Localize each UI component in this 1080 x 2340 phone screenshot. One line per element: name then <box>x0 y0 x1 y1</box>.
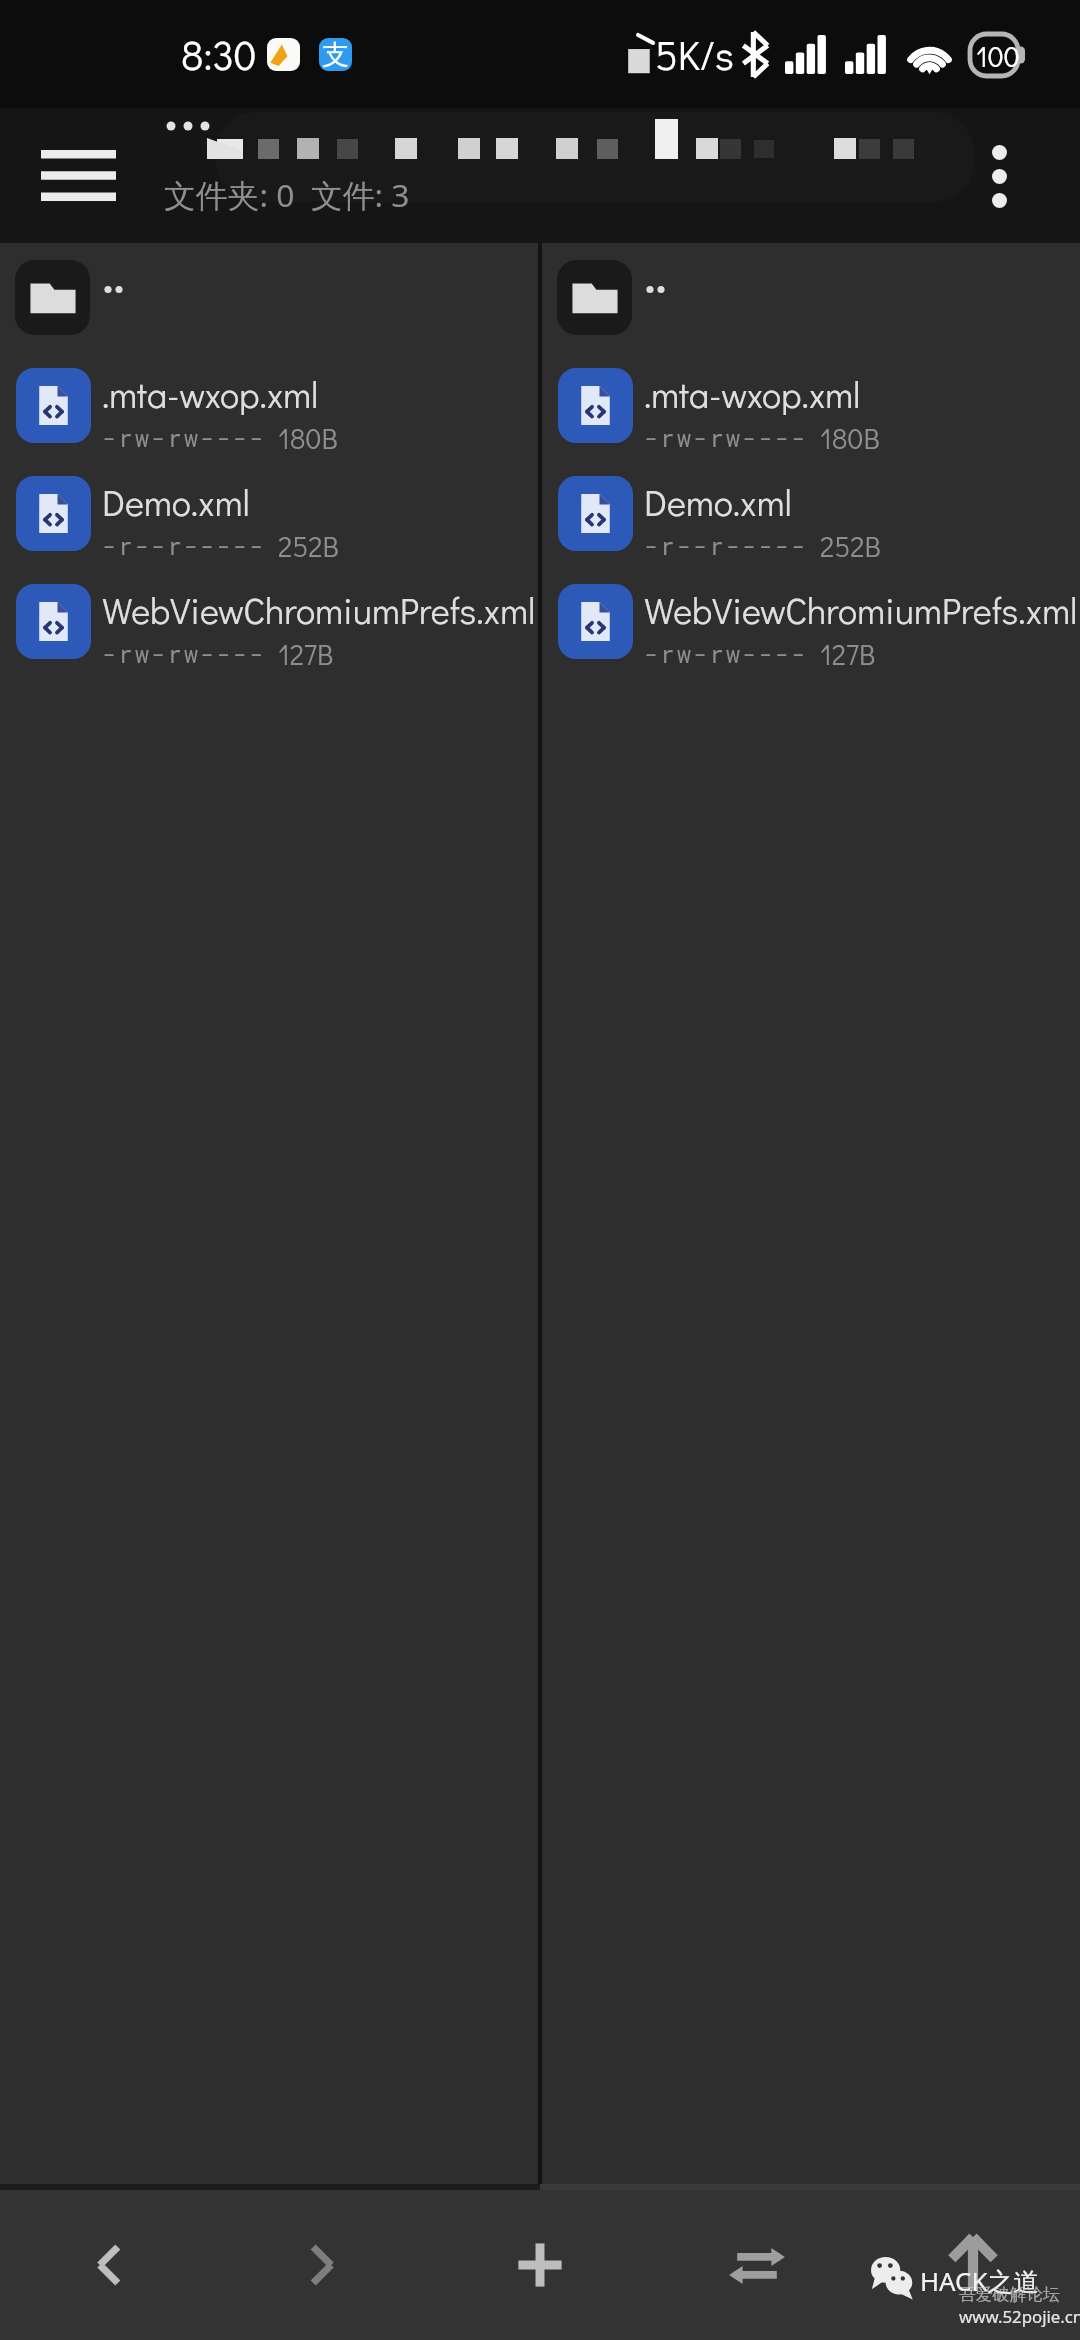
button[interactable]: WebViewChromiumPrefs.xml <box>0 567 538 675</box>
staticText: 127B <box>278 635 334 672</box>
button[interactable]: Back <box>35 2193 179 2337</box>
staticText: -rw-rw---- <box>102 638 266 670</box>
staticText: -rw-rw---- <box>644 422 808 454</box>
staticText: Demo.xml <box>102 478 250 525</box>
button[interactable]: Forward <box>252 2193 396 2337</box>
staticText: 8:30 <box>181 28 257 81</box>
staticText: 支 <box>322 38 349 71</box>
staticText: 5K/s <box>655 28 734 81</box>
staticText: 吾爱破解论坛 <box>959 2284 1060 2305</box>
staticText: 文件夹: 0 文件: 3 <box>164 173 410 216</box>
staticText: HACK之道 <box>920 2263 1039 2298</box>
staticText: WebViewChromiumPrefs.xml <box>102 586 536 633</box>
staticText: -r--r----- <box>102 530 266 562</box>
button[interactable]: More options <box>933 110 1065 242</box>
staticText: 180B <box>278 419 338 456</box>
button[interactable]: Add <box>468 2193 612 2337</box>
staticText: www.52pojie.cn <box>959 2305 1080 2328</box>
button[interactable]: WebViewChromiumPrefs.xml <box>542 567 1080 675</box>
staticText: 252B <box>820 527 881 564</box>
staticText: -rw-rw---- <box>102 422 266 454</box>
button[interactable]: Swap panels <box>685 2193 829 2337</box>
staticText: .mta-wxop.xml <box>644 370 861 417</box>
button[interactable]: Up one level <box>901 2193 1045 2337</box>
button[interactable]: Demo.xml <box>542 459 1080 567</box>
button[interactable]: .mta-wxop.xml <box>542 351 1080 459</box>
staticText: -r--r----- <box>644 530 808 562</box>
button[interactable] <box>542 243 1080 351</box>
staticText: 252B <box>278 527 339 564</box>
staticText: -rw-rw---- <box>644 638 808 670</box>
button[interactable]: .mta-wxop.xml <box>0 351 538 459</box>
button[interactable]: Demo.xml <box>0 459 538 567</box>
button[interactable]: Menu <box>6 108 150 243</box>
staticText: 100 <box>976 37 1020 74</box>
staticText: 180B <box>820 419 880 456</box>
staticText: WebViewChromiumPrefs.xml <box>644 586 1078 633</box>
staticText: 127B <box>820 635 876 672</box>
staticText: Demo.xml <box>644 478 792 525</box>
staticText: .mta-wxop.xml <box>102 370 319 417</box>
button[interactable] <box>0 243 538 351</box>
